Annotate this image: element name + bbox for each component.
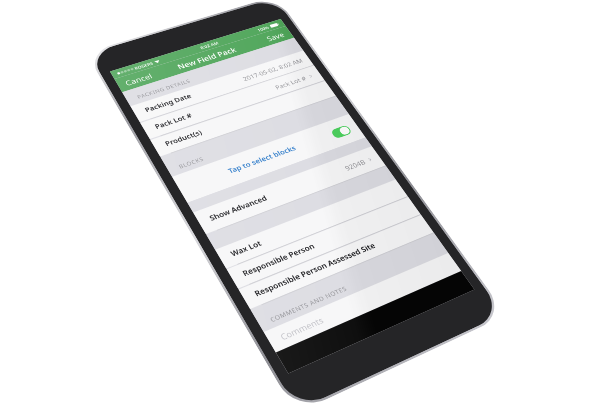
- staticText: COMMENTS AND NOTES: [268, 284, 349, 324]
- button[interactable]: Show Advanced: [193, 146, 385, 234]
- staticText: Wax Lot: [229, 238, 264, 259]
- staticText: New Field Pack: [175, 45, 238, 71]
- staticText: Pack Lot #: [273, 74, 308, 91]
- staticText: Responsible Person Assessed Site: [253, 240, 379, 299]
- button[interactable]: Packing Date: [130, 50, 313, 122]
- staticText: PACKING DETAILS: [136, 78, 192, 100]
- staticText: Packing Date: [143, 92, 194, 115]
- staticText: Show Advanced: [208, 193, 270, 224]
- button[interactable]: Responsible Person: [227, 197, 420, 288]
- button[interactable]: Cancel: [116, 71, 154, 90]
- staticText: Comments: [278, 314, 326, 342]
- staticText: 2017-05-02, 8:02 AM: [241, 57, 304, 83]
- button[interactable]: Pack Lot #: [140, 66, 324, 139]
- button[interactable]: Tap to select blocks: [172, 114, 365, 203]
- button[interactable]: Save: [264, 28, 292, 43]
- button[interactable]: Product(s): [150, 81, 336, 156]
- staticText: Tap to select blocks: [226, 144, 299, 176]
- staticText: 9204B: [343, 158, 367, 172]
- staticText: 8:02 AM: [199, 40, 220, 51]
- staticText: Pack Lot #: [153, 111, 195, 131]
- staticText: ROGERS: [133, 61, 154, 71]
- button[interactable]: Comments: [264, 253, 461, 352]
- staticText: BLOCKS: [177, 155, 205, 170]
- button[interactable]: Blocks enabled toggle: [330, 124, 353, 139]
- button[interactable]: Responsible Person Assessed Site: [239, 215, 433, 309]
- staticText: Responsible Person: [241, 241, 317, 279]
- staticText: Product(s): [163, 128, 204, 149]
- staticText: 100%: [256, 25, 270, 32]
- button[interactable]: Wax Lot: [215, 179, 407, 268]
